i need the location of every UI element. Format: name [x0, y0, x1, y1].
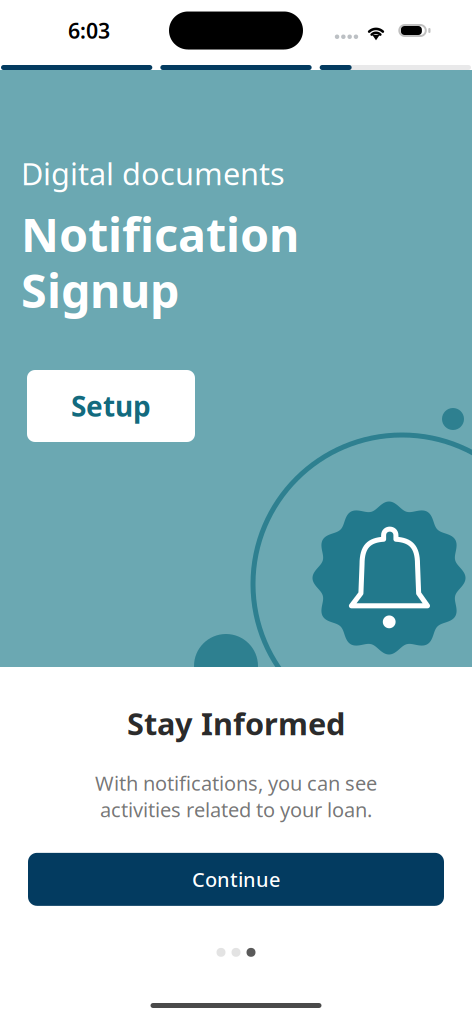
staticText: Continue	[192, 866, 280, 893]
staticText: Digital documents	[21, 153, 285, 194]
button[interactable]: Continue	[28, 853, 444, 906]
staticText: Signup	[21, 259, 179, 321]
staticText: activities related to your loan.	[100, 796, 372, 823]
staticText: Notification	[21, 203, 299, 265]
button[interactable]: Setup	[27, 370, 195, 442]
staticText: 6:03	[68, 16, 110, 45]
staticText: Setup	[71, 387, 151, 425]
staticText: Stay Informed	[127, 703, 345, 744]
staticText: With notifications, you can see	[95, 770, 377, 796]
